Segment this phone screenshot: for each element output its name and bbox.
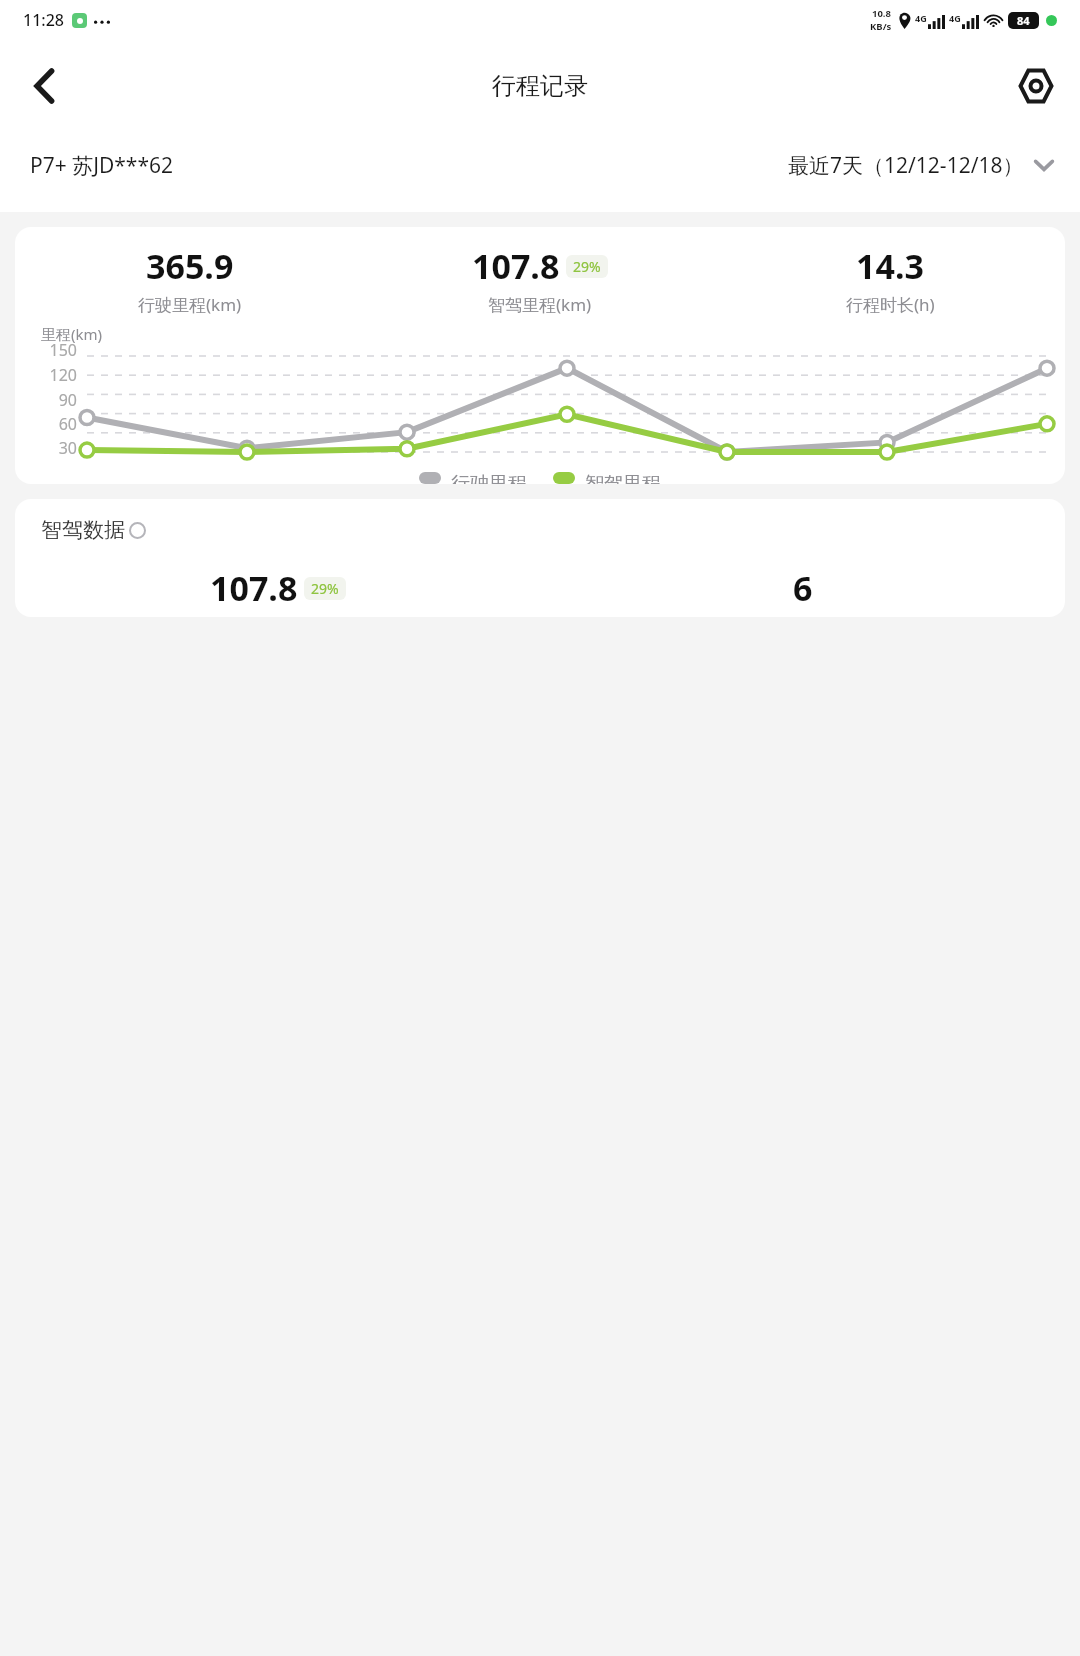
- button[interactable]: 智驾数据: [41, 517, 146, 543]
- staticText: 107.8: [210, 565, 298, 611]
- button[interactable]: Back: [14, 56, 74, 116]
- staticText: 365.9: [146, 243, 234, 289]
- button[interactable]: P7+ 苏JD***62: [30, 151, 173, 180]
- staticText: 里程(km): [41, 324, 103, 344]
- staticText: KB/s: [870, 20, 892, 33]
- staticText: 4G: [915, 12, 927, 24]
- staticText: 29%: [311, 579, 339, 598]
- staticText: 11:28: [23, 9, 64, 31]
- staticText: 智驾里程: [585, 472, 661, 484]
- staticText: 120: [15, 364, 77, 386]
- staticText: 84: [1017, 13, 1030, 28]
- staticText: 4G: [949, 12, 961, 24]
- staticText: 行程时长(h): [846, 293, 935, 316]
- button[interactable]: 最近7天（12/12-12/18）: [788, 151, 1054, 180]
- staticText: 90: [15, 389, 77, 411]
- staticText: 60: [15, 413, 77, 435]
- staticText: 智驾数据: [41, 517, 125, 543]
- staticText: 14.3: [856, 243, 924, 289]
- staticText: 30: [15, 437, 77, 459]
- staticText: 智驾里程(km): [488, 293, 592, 316]
- staticText: 10.8: [872, 7, 891, 20]
- staticText: 150: [15, 339, 77, 361]
- staticText: 行程记录: [492, 71, 588, 101]
- staticText: 107.8: [472, 243, 560, 289]
- staticText: 行驶里程: [451, 472, 527, 484]
- other: Help: [129, 522, 146, 539]
- button[interactable]: Settings: [1006, 56, 1066, 116]
- staticText: 行驶里程(km): [138, 293, 242, 316]
- staticText: 29%: [573, 257, 601, 276]
- staticText: 6: [793, 565, 813, 611]
- staticText: 最近7天（12/12-12/18）: [788, 151, 1024, 180]
